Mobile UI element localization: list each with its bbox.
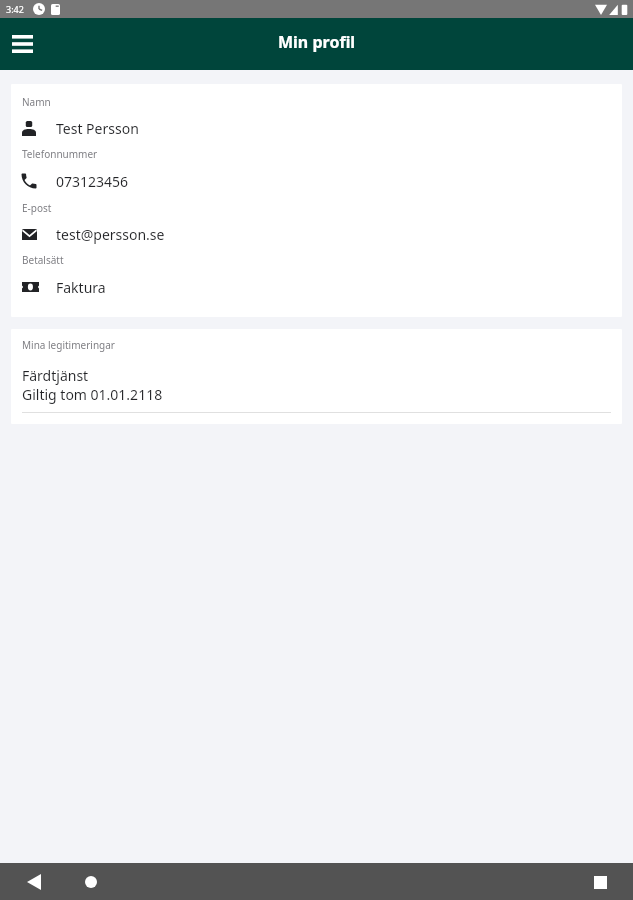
staticText: Telefonnummer (22, 147, 98, 161)
button[interactable]: Namn (11, 89, 622, 141)
button[interactable]: Färdtjänst (11, 353, 622, 414)
staticText: test@persson.se (56, 225, 165, 244)
staticText: 073123456 (56, 172, 129, 191)
button[interactable]: E-post (11, 193, 622, 246)
button[interactable]: Back (16, 864, 52, 900)
staticText: Namn (22, 95, 51, 109)
staticText: Mina legitimeringar (22, 338, 115, 352)
button[interactable]: Telefonnummer (11, 141, 622, 193)
staticText: Färdtjänst (22, 366, 89, 385)
staticText: 3:42 (6, 3, 24, 15)
staticText: E-post (22, 201, 52, 215)
button[interactable]: Betalsätt (11, 246, 622, 299)
button[interactable]: Recent apps (582, 864, 618, 900)
staticText: Min profil (278, 31, 356, 53)
staticText: Betalsätt (22, 253, 64, 267)
staticText: Giltig tom 01.01.2118 (22, 385, 163, 404)
button[interactable]: Home (73, 864, 109, 900)
staticText: Test Persson (56, 119, 139, 138)
staticText: Faktura (56, 278, 106, 297)
button[interactable]: Open navigation menu (0, 21, 45, 66)
